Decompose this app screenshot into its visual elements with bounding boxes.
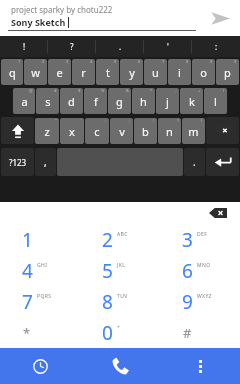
staticText: . — [193, 155, 196, 169]
button[interactable]: t — [96, 59, 119, 85]
staticText: 8 — [102, 289, 113, 315]
button[interactable]: ?123 — [1, 148, 34, 176]
staticText: * — [150, 88, 153, 93]
button[interactable]: k — [180, 88, 203, 114]
button[interactable]: 2 — [80, 224, 160, 255]
button[interactable]: g — [108, 88, 131, 114]
staticText: 6 — [138, 59, 141, 64]
staticText: u — [152, 65, 159, 80]
button[interactable]: 9 — [160, 286, 240, 317]
button[interactable]: : — [192, 36, 240, 57]
staticText: ! — [153, 118, 155, 123]
button[interactable]: l — [204, 88, 227, 114]
button[interactable]: # — [160, 317, 240, 348]
staticText: d — [68, 94, 75, 109]
button[interactable]: e — [48, 59, 71, 85]
button[interactable]: b — [134, 118, 157, 144]
staticText: MNO — [197, 262, 211, 269]
button[interactable]: Call history — [0, 348, 80, 384]
staticText: l — [214, 94, 217, 109]
staticText: n — [166, 124, 173, 139]
button[interactable]: p — [216, 59, 239, 85]
staticText: TUV — [117, 293, 128, 300]
staticText: ?123 — [9, 157, 27, 168]
button[interactable]: j — [156, 88, 179, 114]
button[interactable]: m — [182, 118, 205, 144]
button[interactable]: Delete — [208, 207, 228, 219]
button[interactable]: 7 — [0, 286, 80, 317]
button[interactable]: ! — [0, 36, 48, 57]
staticText: h — [140, 94, 147, 109]
staticText: 3 — [66, 59, 69, 64]
staticText: v — [119, 124, 125, 139]
staticText: 1 — [22, 227, 33, 253]
staticText: ? — [177, 118, 179, 123]
button[interactable]: 1 — [0, 224, 80, 255]
button[interactable]: Enter — [206, 148, 239, 176]
button[interactable]: Send — [205, 3, 235, 33]
button[interactable]: s — [36, 88, 59, 114]
staticText: g — [116, 94, 123, 109]
staticText: & — [126, 88, 129, 93]
button[interactable]: i — [168, 59, 191, 85]
staticText: PQRS — [37, 293, 52, 300]
button[interactable]: c — [85, 118, 109, 144]
staticText: + — [198, 88, 201, 93]
staticText: ( — [223, 88, 225, 93]
button[interactable]: 3 — [160, 224, 240, 255]
staticText: @ — [29, 88, 33, 93]
button[interactable]: ? — [48, 36, 96, 57]
staticText: ! — [23, 41, 26, 52]
staticText: ' — [167, 41, 169, 52]
staticText: ABC — [117, 231, 128, 238]
button[interactable]: y — [120, 59, 143, 85]
staticText: DEF — [197, 231, 208, 238]
button[interactable]: q — [1, 59, 23, 85]
button[interactable]: n — [158, 118, 181, 144]
staticText: t — [106, 65, 110, 80]
button[interactable]: 0 — [80, 317, 160, 348]
staticText: p — [224, 65, 231, 80]
button[interactable]: 4 — [0, 255, 80, 286]
button[interactable]: 8 — [80, 286, 160, 317]
staticText: ? — [70, 41, 74, 52]
button[interactable]: Shift — [1, 117, 34, 144]
button[interactable]: 5 — [80, 255, 160, 286]
staticText: $ — [78, 88, 81, 93]
staticText: - — [175, 88, 177, 93]
button[interactable]: w — [24, 59, 47, 85]
button[interactable]: 6 — [160, 255, 240, 286]
button[interactable]: h — [132, 88, 155, 114]
button[interactable]: z — [35, 118, 59, 144]
staticText: ; — [129, 118, 131, 123]
button[interactable]: Call — [80, 348, 160, 384]
button[interactable]: d — [60, 88, 83, 114]
staticText: 7 — [22, 289, 33, 315]
button[interactable]: , — [35, 148, 56, 176]
button[interactable]: a — [13, 88, 35, 114]
staticText: WXYZ — [197, 293, 212, 300]
staticText: f — [94, 94, 98, 109]
button[interactable]: x — [60, 118, 84, 144]
button[interactable]: . — [184, 148, 205, 176]
button[interactable]: r — [72, 59, 95, 85]
button[interactable]: o — [192, 59, 215, 85]
staticText: ' — [81, 118, 82, 123]
button[interactable]: * — [0, 317, 80, 348]
button[interactable]: u — [144, 59, 167, 85]
staticText: 0 — [102, 320, 113, 346]
staticText: : — [105, 118, 107, 123]
staticText: JKL — [117, 262, 126, 269]
staticText: r — [81, 65, 86, 80]
staticText: 2 — [102, 227, 113, 253]
button[interactable]: . — [96, 36, 144, 57]
staticText: z — [44, 124, 50, 139]
button[interactable]: ' — [144, 36, 192, 57]
staticText: ) — [201, 118, 203, 123]
button[interactable]: More options — [160, 348, 240, 384]
button[interactable]: v — [110, 118, 133, 144]
button[interactable]: Backspace — [206, 117, 239, 144]
button[interactable]: f — [84, 88, 107, 114]
staticText: project sparky by chotu222 — [11, 4, 113, 15]
